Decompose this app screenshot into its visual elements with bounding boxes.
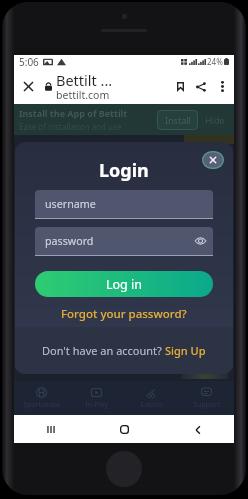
button[interactable]: In-Play [69, 381, 124, 415]
button[interactable]: username [35, 190, 213, 218]
button[interactable]: Hide [205, 114, 225, 126]
button[interactable]: Forgot your password? [15, 305, 233, 323]
staticText: password [45, 234, 94, 249]
staticText: In-Play [85, 400, 108, 410]
button[interactable]: Close dialog [202, 151, 224, 169]
staticText: username [45, 197, 96, 212]
button[interactable]: Support [179, 381, 234, 415]
staticText: bettilt.com [56, 88, 110, 102]
staticText: Support [193, 400, 220, 410]
button[interactable]: Casino [124, 381, 179, 415]
staticText: Bettilt ... [56, 70, 113, 90]
button[interactable]: Log in [35, 271, 213, 297]
staticText: Sign Up [165, 343, 206, 358]
button[interactable]: Bookmark [170, 68, 190, 105]
button[interactable]: Install [157, 110, 198, 130]
button[interactable]: Recents [14, 416, 88, 443]
button[interactable]: Home [88, 416, 161, 443]
staticText: Install the App of Bettilt [19, 107, 128, 119]
staticText: Install [165, 114, 191, 126]
staticText: 5:06 [19, 55, 39, 68]
button[interactable]: password [35, 227, 213, 255]
staticText: Forgot your password? [61, 306, 187, 322]
staticText: Login [99, 158, 149, 183]
button[interactable]: Close tab [14, 68, 42, 105]
staticText: Ease of installation and use [19, 121, 122, 132]
staticText: Log in [106, 276, 143, 293]
button[interactable]: Sportsbook [14, 381, 69, 415]
staticText: Hide [205, 114, 225, 126]
staticText: Don't have an account? [42, 343, 162, 358]
button[interactable]: More options [212, 68, 232, 105]
button[interactable]: Sign Up [165, 343, 206, 358]
button[interactable]: Share [190, 68, 212, 105]
button[interactable]: Back [161, 416, 234, 443]
staticText: Sportsbook [23, 400, 61, 410]
staticText: Casino [140, 400, 163, 410]
staticText: 24% [207, 56, 223, 67]
